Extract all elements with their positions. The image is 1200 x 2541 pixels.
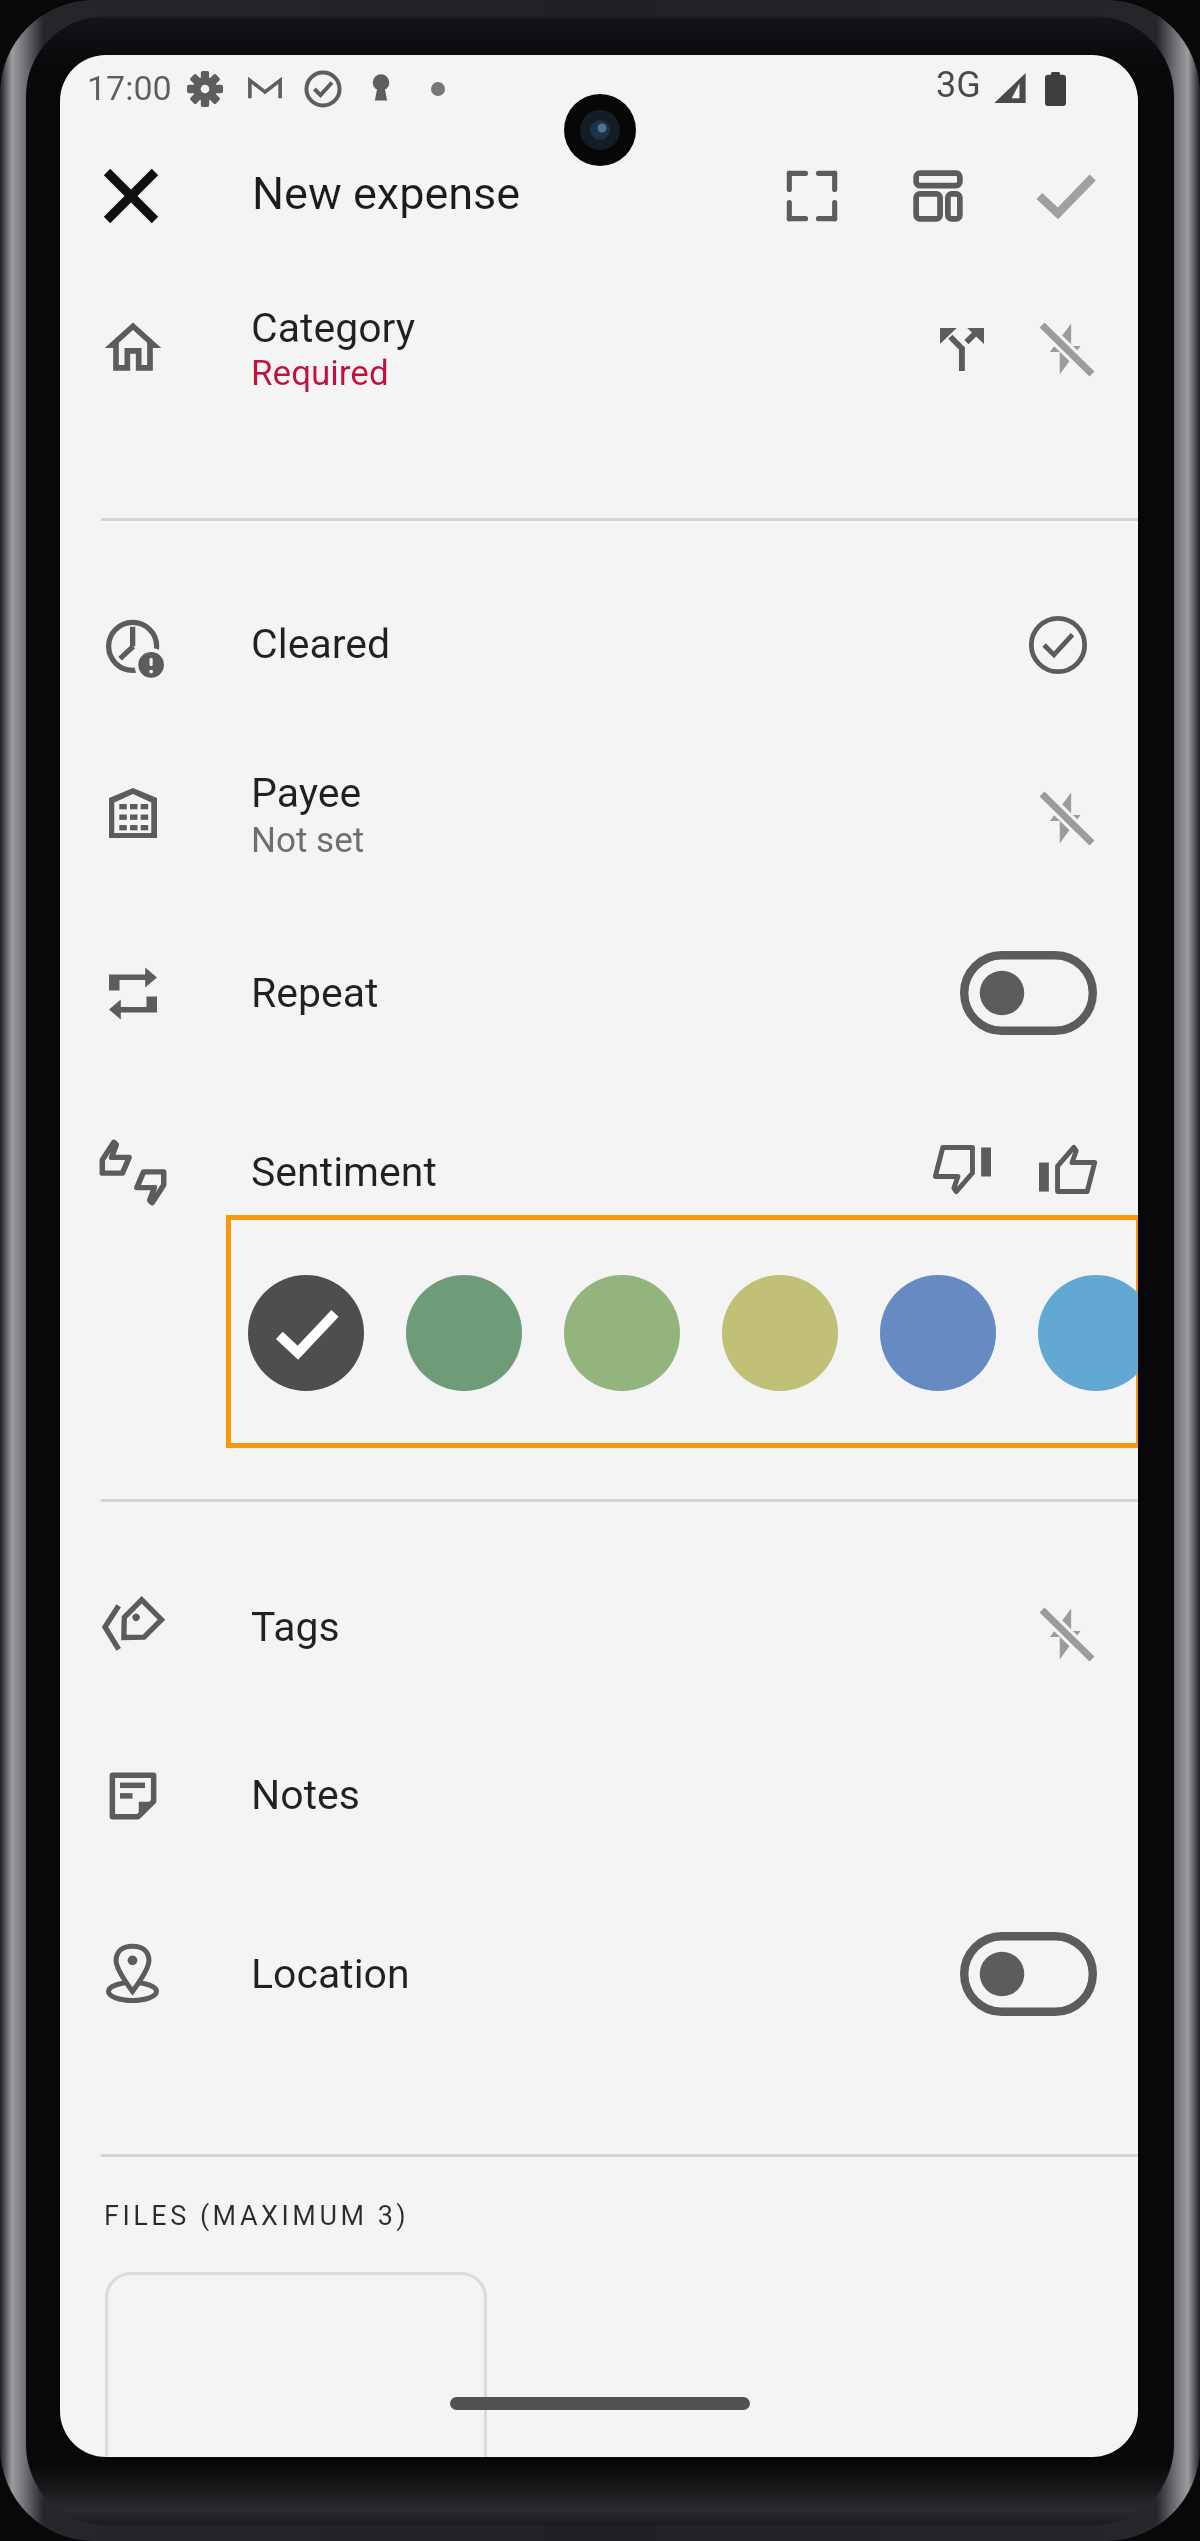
button[interactable]: Add file [105, 2272, 487, 2457]
staticText: 17:00 [87, 68, 172, 108]
staticText: Tags [251, 1603, 340, 1651]
button[interactable]: Thumbs down [910, 1121, 1014, 1225]
staticText: 3G [936, 64, 981, 106]
staticText: Notes [251, 1771, 360, 1819]
staticText: Cleared [251, 620, 391, 668]
staticText: FILES (MAXIMUM 3) [104, 2200, 410, 2232]
staticText: Required [251, 353, 389, 394]
button[interactable]: Repeat toggle [960, 951, 1097, 1035]
button[interactable]: Autofill off [1015, 1582, 1119, 1686]
button[interactable]: Sentiment level 5 [880, 1275, 996, 1391]
button[interactable]: Thumbs up [1016, 1121, 1120, 1225]
button[interactable]: Sentiment level 2 [406, 1275, 522, 1391]
button[interactable]: Autofill off [1015, 766, 1119, 870]
button[interactable]: Close [79, 144, 183, 248]
button[interactable]: Layout [886, 144, 990, 248]
button[interactable]: Split transaction [940, 328, 984, 371]
button[interactable]: Save [1014, 144, 1118, 248]
staticText: Sentiment [251, 1148, 437, 1196]
staticText: Location [251, 1950, 410, 1998]
button[interactable]: Sentiment level 3 [564, 1275, 680, 1391]
staticText: New expense [252, 167, 521, 220]
staticText: Not set [251, 820, 365, 861]
staticText: Category [251, 304, 416, 352]
button[interactable]: Sentiment level 6 [1038, 1275, 1138, 1391]
button[interactable]: Location toggle [960, 1932, 1097, 2016]
button[interactable]: Sentiment level 4 [722, 1275, 838, 1391]
button[interactable]: Scan receipt [760, 144, 864, 248]
staticText: Payee [251, 769, 362, 817]
staticText: Repeat [251, 969, 379, 1017]
button[interactable]: Cleared [1006, 593, 1110, 697]
button[interactable]: Autofill off [1015, 297, 1119, 401]
button[interactable]: Sentiment level 1 [248, 1275, 364, 1391]
